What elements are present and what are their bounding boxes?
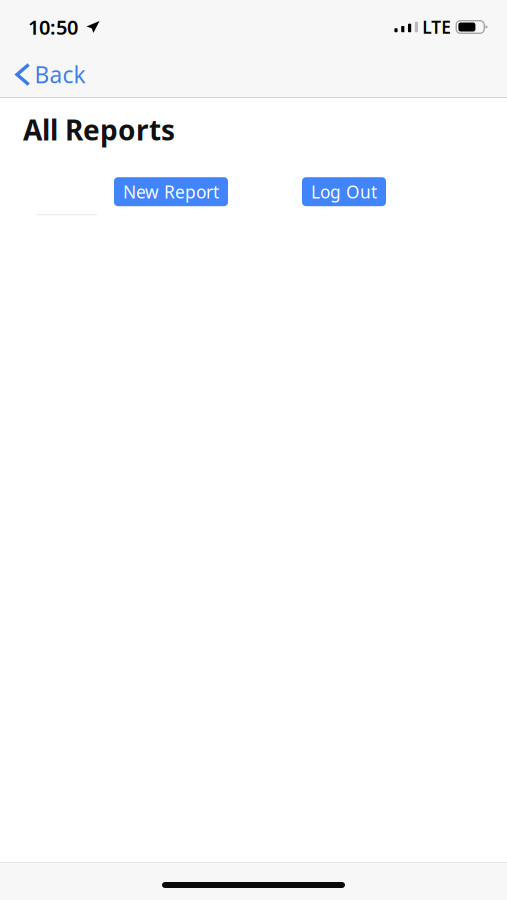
staticText: All Reports [23, 111, 175, 148]
staticText: LTE [422, 15, 451, 38]
staticText: 10:50 [28, 14, 78, 40]
button[interactable]: Back [0, 49, 99, 99]
staticText: New Report [123, 180, 219, 203]
staticText: Log Out [311, 180, 377, 203]
button[interactable]: New Report [114, 177, 228, 206]
staticText: Back [34, 59, 85, 89]
button[interactable]: Log Out [302, 177, 386, 206]
